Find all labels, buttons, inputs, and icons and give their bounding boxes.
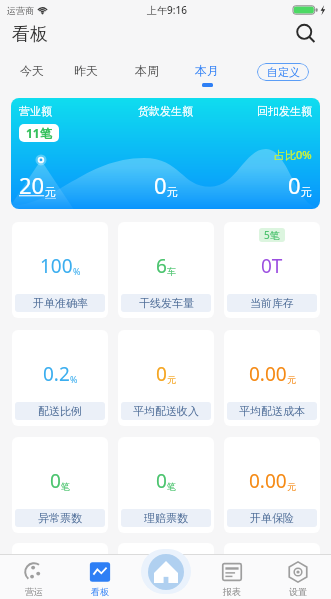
staticText: 设置	[289, 586, 307, 597]
staticText: 开单保险	[250, 511, 294, 525]
staticText: 上午9:16	[147, 3, 187, 17]
staticText: 0.00	[249, 361, 287, 387]
button[interactable]: 0.2	[12, 330, 108, 426]
staticText: 平均配送成本	[239, 404, 305, 418]
staticText: 6	[156, 253, 167, 279]
staticText: 今天	[20, 63, 44, 78]
button[interactable]: 100	[12, 222, 108, 318]
staticText: 干线发车量	[139, 296, 194, 310]
button[interactable]: 0	[12, 437, 108, 533]
button[interactable]: Home	[141, 549, 191, 594]
button[interactable]: 今天	[8, 48, 56, 92]
staticText: 元	[301, 185, 312, 199]
staticText: 货款发生额	[138, 104, 193, 118]
staticText: 营业额	[19, 104, 52, 118]
staticText: 看板	[12, 23, 48, 46]
staticText: 配送比例	[38, 404, 82, 418]
staticText: 车	[167, 266, 176, 277]
staticText: 元	[45, 185, 56, 199]
button[interactable]: 报表	[199, 554, 265, 599]
staticText: 本月	[195, 63, 219, 78]
button[interactable]: 营业额	[11, 98, 320, 209]
button[interactable]: Search	[289, 20, 323, 48]
staticText: 元	[287, 374, 296, 385]
staticText: 0.00	[249, 468, 287, 494]
staticText: 笔	[61, 481, 70, 492]
staticText: 笔	[167, 481, 176, 492]
staticText: 自定义	[267, 65, 300, 79]
button[interactable]: 0.00	[224, 437, 320, 533]
staticText: 当前库存	[250, 296, 294, 310]
staticText: 看板	[91, 586, 109, 597]
button[interactable]: 自定义	[257, 63, 309, 81]
staticText: 回扣发生额	[257, 104, 312, 118]
button[interactable]: 本月	[183, 48, 231, 92]
button[interactable]: 5笔	[224, 222, 320, 318]
staticText: 平均配送收入	[133, 404, 199, 418]
button[interactable]: 本周	[123, 48, 171, 92]
staticText: 5笔	[264, 228, 280, 242]
staticText: 占比0%	[274, 147, 312, 162]
staticText: 0T	[261, 253, 283, 279]
staticText: 异常票数	[38, 511, 82, 525]
button[interactable]: 昨天	[62, 48, 110, 92]
button[interactable]: 营运	[0, 554, 67, 599]
staticText: 元	[287, 481, 296, 492]
staticText: 0.2	[43, 361, 70, 387]
staticText: 20	[19, 170, 45, 200]
staticText: 元	[167, 185, 178, 199]
staticText: 营运	[25, 586, 43, 597]
staticText: 0	[288, 170, 301, 200]
staticText: 0	[156, 468, 167, 494]
button[interactable]: 设置	[265, 554, 331, 599]
staticText: 100	[40, 253, 73, 279]
staticText: 运营商	[7, 5, 34, 16]
staticText: 报表	[223, 586, 241, 597]
button[interactable]: 0.00	[224, 330, 320, 426]
button[interactable]: 0	[118, 330, 214, 426]
staticText: 0	[154, 170, 167, 200]
staticText: 开单准确率	[33, 296, 88, 310]
staticText: 11笔	[26, 125, 52, 141]
staticText: %	[73, 265, 81, 277]
staticText: 理赔票数	[144, 511, 188, 525]
staticText: 元	[167, 374, 176, 385]
staticText: 昨天	[74, 63, 98, 78]
button[interactable]: 0	[118, 437, 214, 533]
button[interactable]: 看板	[67, 554, 133, 599]
staticText: %	[70, 373, 78, 385]
staticText: 0	[50, 468, 61, 494]
staticText: 本周	[135, 63, 159, 78]
button[interactable]: 6	[118, 222, 214, 318]
staticText: 0	[156, 361, 167, 387]
